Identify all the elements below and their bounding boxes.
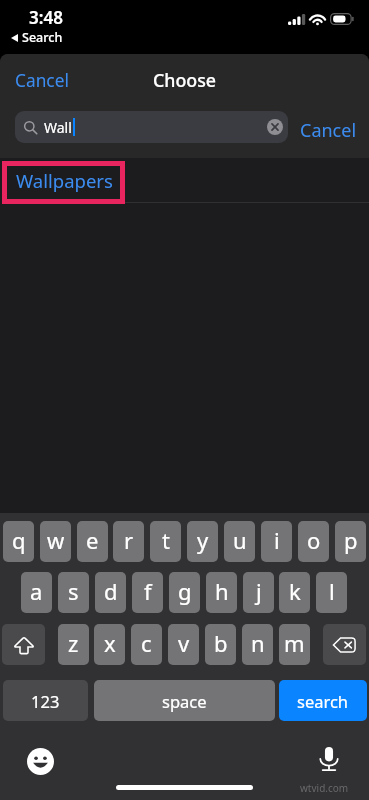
- staticText: u: [233, 525, 247, 555]
- staticText: 3:48: [29, 6, 63, 29]
- staticText: i: [274, 525, 280, 555]
- staticText: g: [178, 576, 192, 606]
- button[interactable]: b: [205, 624, 236, 665]
- button[interactable]: space: [94, 680, 275, 721]
- button[interactable]: z: [58, 624, 89, 665]
- button[interactable]: Dictation: [314, 744, 344, 774]
- staticText: f: [144, 576, 152, 606]
- staticText: d: [104, 576, 118, 606]
- button[interactable]: Wall: [15, 111, 288, 143]
- button[interactable]: h: [206, 572, 237, 613]
- button[interactable]: a: [21, 572, 52, 613]
- staticText: j: [256, 576, 262, 606]
- staticText: p: [344, 525, 358, 555]
- staticText: c: [141, 628, 152, 658]
- button[interactable]: t: [150, 521, 181, 562]
- button[interactable]: f: [132, 572, 163, 613]
- staticText: 123: [31, 690, 60, 712]
- button[interactable]: e: [77, 521, 108, 562]
- button[interactable]: g: [169, 572, 200, 613]
- staticText: s: [68, 576, 79, 606]
- staticText: a: [30, 576, 43, 606]
- button[interactable]: Clear text: [267, 119, 283, 135]
- staticText: Cancel: [15, 69, 69, 93]
- button[interactable]: v: [168, 624, 199, 665]
- button[interactable]: c: [131, 624, 162, 665]
- staticText: x: [104, 628, 116, 658]
- staticText: space: [162, 690, 207, 712]
- button[interactable]: u: [224, 521, 255, 562]
- staticText: e: [86, 525, 99, 555]
- staticText: l: [329, 576, 335, 606]
- staticText: z: [68, 628, 79, 658]
- button[interactable]: Cancel: [292, 113, 365, 148]
- button[interactable]: m: [279, 624, 310, 665]
- staticText: h: [215, 576, 229, 606]
- staticText: v: [178, 628, 190, 658]
- button[interactable]: o: [298, 521, 329, 562]
- button[interactable]: n: [242, 624, 273, 665]
- button[interactable]: d: [95, 572, 126, 613]
- button[interactable]: r: [113, 521, 144, 562]
- button[interactable]: j: [243, 572, 274, 613]
- staticText: y: [197, 525, 209, 555]
- button[interactable]: Cancel: [5, 63, 79, 99]
- staticText: o: [307, 525, 321, 555]
- button[interactable]: Emoji keyboard: [27, 748, 54, 775]
- staticText: wtvid.com: [300, 781, 349, 795]
- staticText: m: [284, 628, 305, 658]
- button[interactable]: l: [316, 572, 347, 613]
- staticText: search: [297, 690, 349, 712]
- button[interactable]: Shift: [2, 624, 45, 665]
- button[interactable]: 123: [3, 680, 88, 721]
- button[interactable]: i: [261, 521, 292, 562]
- button[interactable]: q: [3, 521, 34, 562]
- button[interactable]: k: [279, 572, 310, 613]
- staticText: b: [214, 628, 228, 658]
- button[interactable]: Wallpapers: [0, 158, 369, 203]
- staticText: q: [12, 525, 26, 555]
- button[interactable]: w: [40, 521, 71, 562]
- staticText: Wallpapers: [16, 168, 113, 193]
- button[interactable]: p: [335, 521, 366, 562]
- staticText: Cancel: [300, 118, 357, 143]
- button[interactable]: search: [279, 680, 367, 721]
- staticText: Search: [22, 29, 63, 46]
- button[interactable]: x: [94, 624, 125, 665]
- staticText: n: [251, 628, 265, 658]
- button[interactable]: Backspace: [323, 624, 366, 665]
- button[interactable]: y: [187, 521, 218, 562]
- button[interactable]: s: [58, 572, 89, 613]
- staticText: k: [289, 576, 301, 606]
- staticText: Choose: [153, 68, 217, 92]
- staticText: t: [162, 525, 170, 555]
- staticText: Wall: [44, 118, 72, 137]
- staticText: w: [47, 525, 65, 555]
- staticText: r: [124, 525, 134, 555]
